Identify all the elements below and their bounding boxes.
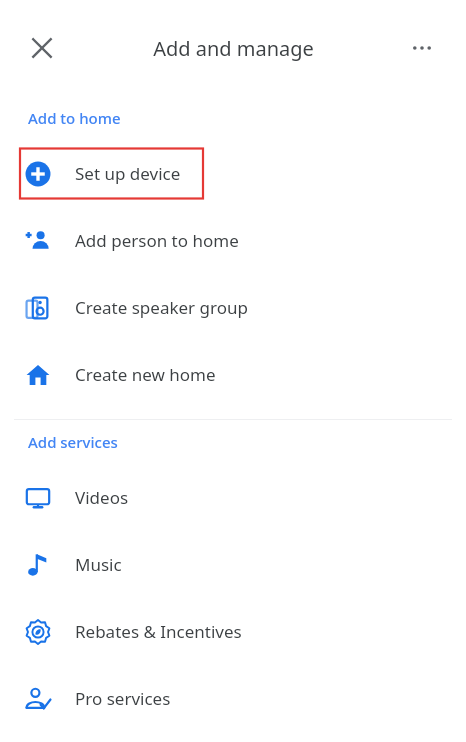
staticText: Add and manage [153, 35, 314, 62]
button[interactable]: Rebates & Incentives [0, 598, 466, 665]
staticText: Add person to home [75, 229, 239, 252]
button[interactable]: Music [0, 531, 466, 598]
button[interactable]: Close [18, 24, 66, 72]
staticText: Add services [28, 432, 118, 452]
button[interactable]: Videos [0, 464, 466, 531]
button[interactable]: Create new home [0, 341, 466, 408]
button[interactable]: More options [400, 26, 444, 70]
staticText: Videos [75, 486, 129, 509]
staticText: Set up device [75, 162, 181, 185]
staticText: Create speaker group [75, 296, 248, 319]
button[interactable]: Pro services [0, 665, 466, 732]
staticText: Add to home [28, 108, 121, 128]
staticText: Music [75, 553, 122, 576]
button[interactable]: Set up device [0, 140, 466, 207]
staticText: Rebates & Incentives [75, 620, 242, 643]
staticText: Create new home [75, 363, 216, 386]
button[interactable]: Create speaker group [0, 274, 466, 341]
staticText: Pro services [75, 687, 171, 710]
button[interactable]: Add person to home [0, 207, 466, 274]
